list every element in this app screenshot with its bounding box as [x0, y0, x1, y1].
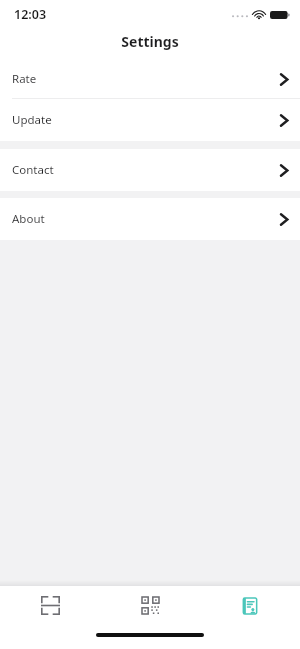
button[interactable]: About: [0, 198, 300, 240]
button[interactable]: Update: [0, 99, 300, 141]
staticText: 12:03: [14, 6, 47, 23]
button[interactable]: My codes: [200, 586, 300, 625]
staticText: Contact: [12, 162, 54, 178]
button[interactable]: QR code: [100, 586, 200, 625]
button[interactable]: Rate: [0, 60, 300, 99]
staticText: About: [12, 211, 45, 227]
staticText: Rate: [12, 71, 37, 87]
staticText: Settings: [121, 32, 179, 51]
button[interactable]: Scan: [0, 586, 100, 625]
staticText: Update: [12, 112, 52, 128]
button[interactable]: Contact: [0, 149, 300, 191]
